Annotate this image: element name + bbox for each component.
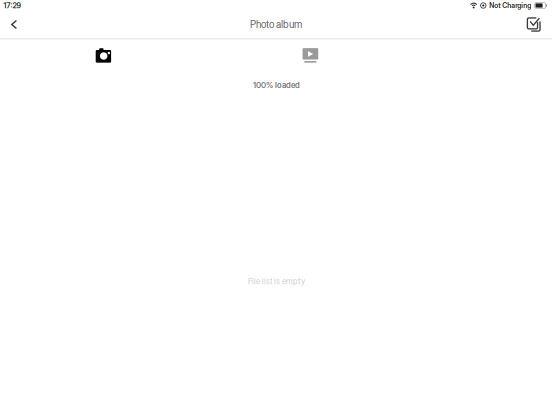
staticText: Not Charging	[489, 1, 531, 10]
button[interactable]: Record video	[297, 44, 323, 66]
button[interactable]: Back	[0, 13, 28, 35]
staticText: Photo album	[250, 18, 302, 30]
staticText: File list is empty	[248, 276, 305, 286]
staticText: 100% loaded	[253, 80, 300, 90]
button[interactable]: Take photo	[90, 44, 116, 66]
button[interactable]: Select all	[517, 13, 552, 36]
staticText: 17:29	[3, 1, 21, 10]
